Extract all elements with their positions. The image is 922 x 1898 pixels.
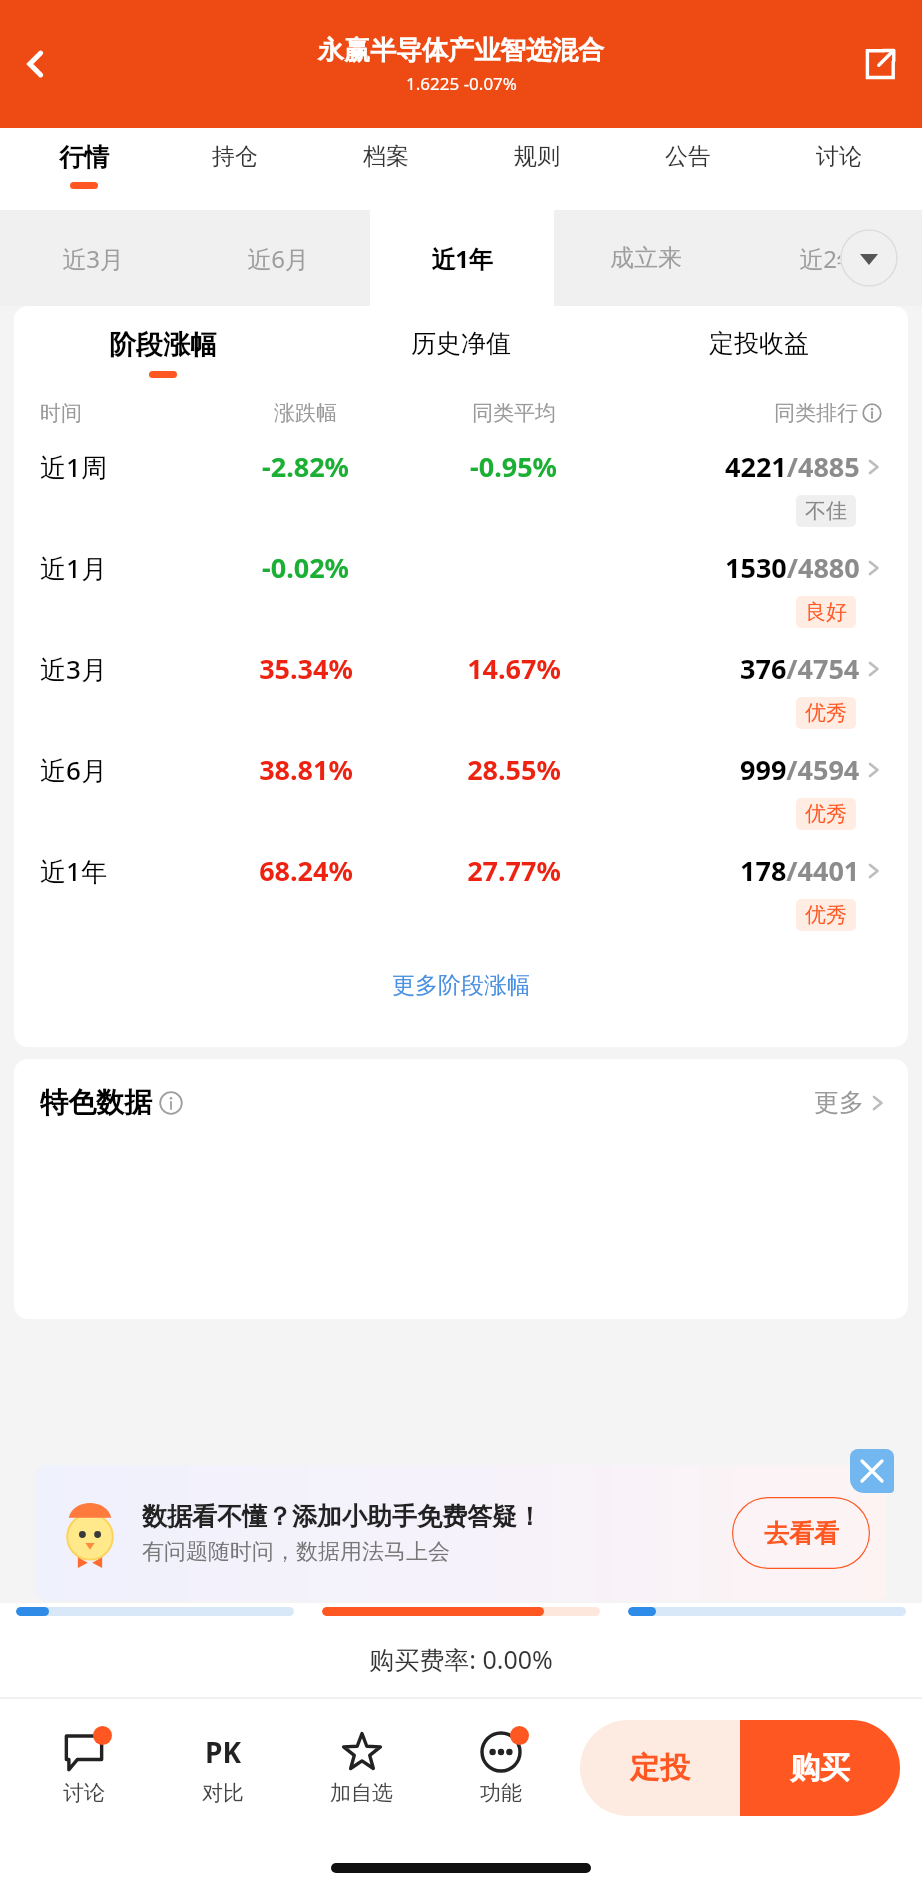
button[interactable]: 近6月 bbox=[185, 210, 370, 306]
staticText: 68.24% bbox=[259, 852, 353, 889]
staticText: 近6月 bbox=[247, 242, 309, 275]
button[interactable]: 近6月 bbox=[14, 729, 908, 830]
staticText: 数据看不懂？添加小助手免费答疑！ bbox=[142, 1501, 542, 1532]
staticText: PK bbox=[205, 1733, 241, 1771]
button[interactable]: 持仓 bbox=[159, 128, 310, 210]
staticText: 28.55% bbox=[467, 751, 561, 788]
staticText: 1.6225 -0.07% bbox=[406, 72, 517, 95]
button[interactable]: 功能 bbox=[431, 1698, 570, 1838]
button[interactable]: PK bbox=[153, 1698, 292, 1838]
staticText: 讨论 bbox=[816, 142, 862, 171]
staticText: 购买 bbox=[790, 1749, 850, 1787]
staticText: 功能 bbox=[480, 1780, 522, 1806]
staticText: 38.81% bbox=[259, 751, 353, 788]
button[interactable]: 近3月 bbox=[14, 628, 908, 729]
staticText: 特色数据 bbox=[40, 1085, 152, 1120]
button[interactable]: Close bbox=[850, 1449, 894, 1493]
staticText: 成立来 bbox=[610, 243, 682, 273]
staticText: 定投 bbox=[630, 1749, 690, 1787]
staticText: 购买费率: 0.00% bbox=[369, 1642, 553, 1676]
staticText: 近1月 bbox=[40, 550, 107, 586]
button[interactable]: 更多阶段涨幅 bbox=[14, 957, 908, 1013]
button[interactable]: 更多 bbox=[814, 1087, 886, 1118]
staticText: 定投收益 bbox=[709, 328, 809, 359]
staticText: 不佳 bbox=[805, 498, 847, 524]
staticText: 档案 bbox=[363, 142, 409, 171]
button[interactable]: 讨论 bbox=[14, 1698, 153, 1838]
staticText: 优秀 bbox=[805, 700, 847, 726]
staticText: 近3月 bbox=[40, 651, 107, 687]
staticText: 近1年 bbox=[431, 242, 493, 275]
staticText: 同类排行 bbox=[774, 400, 858, 426]
staticText: 良好 bbox=[805, 599, 847, 625]
button[interactable]: Share bbox=[852, 36, 908, 92]
button[interactable]: 加自选 bbox=[292, 1698, 431, 1838]
staticText: 27.77% bbox=[467, 852, 561, 889]
staticText: 优秀 bbox=[805, 902, 847, 928]
staticText: -0.02% bbox=[262, 549, 349, 586]
staticText: 1530/4880 bbox=[725, 549, 860, 586]
staticText: 持仓 bbox=[212, 142, 258, 171]
staticText: 35.34% bbox=[259, 650, 353, 687]
button[interactable]: 规则 bbox=[461, 128, 612, 210]
staticText: 涨跌幅 bbox=[274, 400, 337, 426]
button[interactable]: 公告 bbox=[612, 128, 763, 210]
button[interactable]: 阶段涨幅 bbox=[14, 328, 312, 378]
staticText: 公告 bbox=[665, 142, 711, 171]
staticText: -0.95% bbox=[470, 448, 557, 485]
staticText: 376/4754 bbox=[740, 650, 860, 687]
staticText: 近6月 bbox=[40, 752, 107, 788]
button[interactable]: 成立来 bbox=[554, 210, 738, 306]
button[interactable]: 近2年 bbox=[738, 210, 922, 306]
button[interactable]: 去看看 bbox=[732, 1497, 870, 1569]
staticText: 行情 bbox=[59, 142, 109, 173]
staticText: 更多 bbox=[814, 1087, 864, 1118]
staticText: 更多阶段涨幅 bbox=[392, 971, 530, 1000]
button[interactable]: 讨论 bbox=[763, 128, 914, 210]
staticText: -2.82% bbox=[262, 448, 349, 485]
button[interactable]: 档案 bbox=[310, 128, 461, 210]
button[interactable]: 近1周 bbox=[14, 426, 908, 527]
staticText: 规则 bbox=[514, 142, 560, 171]
staticText: 阶段涨幅 bbox=[109, 328, 217, 362]
staticText: 讨论 bbox=[63, 1780, 105, 1806]
staticText: 优秀 bbox=[805, 801, 847, 827]
button[interactable]: 近1年 bbox=[370, 210, 554, 306]
staticText: 近2年 bbox=[799, 242, 861, 275]
button[interactable]: 定投收益 bbox=[610, 328, 908, 375]
staticText: 4221/4885 bbox=[725, 448, 860, 485]
staticText: 同类平均 bbox=[472, 400, 556, 426]
staticText: 历史净值 bbox=[411, 328, 511, 359]
button[interactable]: 数据看不懂？添加小助手免费答疑！ bbox=[36, 1465, 886, 1601]
staticText: 999/4594 bbox=[740, 751, 860, 788]
staticText: 近1周 bbox=[40, 449, 107, 485]
button[interactable]: 近3月 bbox=[0, 210, 185, 306]
button[interactable]: 历史净值 bbox=[312, 328, 610, 375]
button[interactable]: 近1年 bbox=[14, 830, 908, 931]
staticText: 近3月 bbox=[62, 242, 124, 275]
staticText: 去看看 bbox=[764, 1518, 839, 1549]
button[interactable]: More periods bbox=[840, 229, 898, 287]
staticText: 永赢半导体产业智选混合 bbox=[318, 34, 604, 67]
button[interactable]: 行情 bbox=[8, 128, 159, 210]
button[interactable]: 定投 bbox=[580, 1720, 740, 1816]
staticText: 有问题随时问，数据用法马上会 bbox=[142, 1538, 450, 1566]
button[interactable]: 近1月 bbox=[14, 527, 908, 628]
staticText: 加自选 bbox=[330, 1780, 393, 1806]
staticText: 对比 bbox=[202, 1780, 244, 1806]
staticText: 近1年 bbox=[40, 853, 107, 889]
staticText: 时间 bbox=[40, 400, 82, 426]
button[interactable]: Back bbox=[8, 36, 64, 92]
staticText: 14.67% bbox=[467, 650, 561, 687]
staticText: 178/4401 bbox=[740, 852, 860, 889]
button[interactable]: 购买 bbox=[740, 1720, 900, 1816]
